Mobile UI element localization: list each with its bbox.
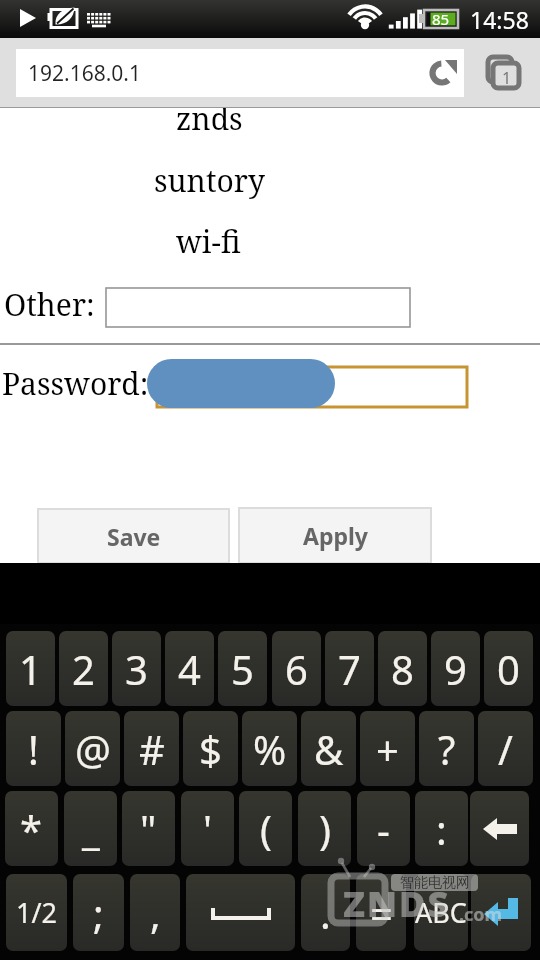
button[interactable]: Space bbox=[186, 874, 295, 951]
button[interactable]: = bbox=[356, 874, 406, 951]
button[interactable]: 1 bbox=[6, 631, 55, 706]
button[interactable]: - bbox=[357, 791, 410, 866]
button[interactable]: 4 bbox=[165, 631, 214, 706]
staticText: 6 bbox=[285, 642, 308, 696]
staticText: 14:58 bbox=[470, 4, 529, 35]
button[interactable]: 6 bbox=[272, 631, 321, 706]
staticText: 1/2 bbox=[16, 894, 57, 931]
button[interactable]: # bbox=[124, 711, 179, 786]
staticText: ZNDS bbox=[343, 879, 451, 928]
staticText: . bbox=[320, 886, 331, 940]
staticText: " bbox=[140, 802, 157, 856]
staticText: ' bbox=[203, 802, 212, 856]
staticText: suntory bbox=[154, 160, 265, 201]
staticText: 1 bbox=[502, 67, 512, 89]
staticText: Save bbox=[107, 521, 161, 552]
staticText: 9 bbox=[444, 642, 467, 696]
button[interactable]: 0 bbox=[484, 631, 533, 706]
staticText: wi-fi bbox=[176, 221, 241, 262]
staticText: ( bbox=[260, 802, 272, 856]
button[interactable]: Enter bbox=[471, 874, 531, 951]
button[interactable]: @ bbox=[65, 711, 120, 786]
button[interactable]: Save bbox=[38, 509, 229, 563]
button[interactable]: . bbox=[301, 874, 350, 951]
staticText: 3 bbox=[125, 642, 148, 696]
button[interactable]: 7 bbox=[325, 631, 374, 706]
button[interactable]: , bbox=[130, 874, 180, 951]
staticText: Password: bbox=[2, 363, 149, 404]
button[interactable]: Backspace bbox=[470, 791, 529, 866]
staticText: 192.168.0.1 bbox=[28, 59, 141, 88]
staticText: ) bbox=[319, 802, 331, 856]
staticText: 智能电视网 bbox=[400, 874, 470, 891]
staticText: Apply bbox=[303, 520, 368, 551]
button[interactable]: / bbox=[478, 711, 533, 786]
button[interactable]: ! bbox=[6, 711, 61, 786]
button[interactable]: ABC bbox=[414, 874, 468, 951]
button[interactable]: Refresh bbox=[418, 49, 464, 97]
staticText: & bbox=[314, 722, 344, 776]
staticText: 2 bbox=[72, 642, 95, 696]
staticText: znds bbox=[176, 98, 243, 139]
staticText: 4 bbox=[178, 642, 201, 696]
button[interactable]: 192.168.0.1 bbox=[16, 49, 464, 97]
staticText: @ bbox=[75, 722, 111, 776]
button[interactable]: + bbox=[360, 711, 415, 786]
staticText: + bbox=[376, 722, 399, 776]
button[interactable]: Apply bbox=[239, 508, 431, 563]
button[interactable]: 3 bbox=[112, 631, 161, 706]
staticText: $ bbox=[199, 722, 222, 776]
button[interactable]: " bbox=[122, 791, 175, 866]
button[interactable]: * bbox=[5, 791, 58, 866]
staticText: * bbox=[20, 802, 43, 856]
button[interactable]: 9 bbox=[431, 631, 480, 706]
button[interactable]: & bbox=[301, 711, 356, 786]
button[interactable]: 5 bbox=[218, 631, 267, 706]
staticText: ABC bbox=[415, 894, 467, 931]
button[interactable]: ? bbox=[419, 711, 474, 786]
staticText: 0 bbox=[497, 642, 520, 696]
button[interactable] bbox=[157, 367, 467, 407]
button[interactable]: _ bbox=[64, 791, 117, 866]
staticText: 5 bbox=[231, 642, 254, 696]
staticText: ? bbox=[438, 722, 456, 776]
button[interactable]: : bbox=[415, 791, 468, 866]
button[interactable]: ; bbox=[73, 874, 124, 951]
button[interactable]: $ bbox=[183, 711, 238, 786]
button[interactable]: % bbox=[242, 711, 297, 786]
staticText: ; bbox=[93, 886, 104, 940]
button[interactable]: 1/2 bbox=[6, 874, 67, 951]
staticText: - bbox=[377, 802, 390, 856]
staticText: ! bbox=[28, 722, 39, 776]
button[interactable] bbox=[106, 288, 410, 327]
staticText: _ bbox=[82, 802, 100, 856]
button[interactable]: ' bbox=[181, 791, 234, 866]
staticText: .com bbox=[459, 902, 503, 927]
staticText: Other: bbox=[4, 284, 95, 325]
staticText: 7 bbox=[338, 642, 361, 696]
button[interactable]: ( bbox=[239, 791, 292, 866]
staticText: / bbox=[498, 722, 513, 776]
staticText: : bbox=[436, 802, 447, 856]
staticText: 1 bbox=[19, 642, 42, 696]
button[interactable]: Tabs bbox=[483, 51, 527, 95]
staticText: 8 bbox=[391, 642, 414, 696]
staticText: % bbox=[253, 722, 287, 776]
button[interactable]: 2 bbox=[59, 631, 108, 706]
staticText: # bbox=[139, 722, 165, 776]
button[interactable]: 8 bbox=[378, 631, 427, 706]
staticText: , bbox=[150, 886, 161, 940]
button[interactable]: ) bbox=[298, 791, 351, 866]
staticText: = bbox=[370, 886, 393, 940]
staticText: 85 bbox=[432, 9, 450, 29]
